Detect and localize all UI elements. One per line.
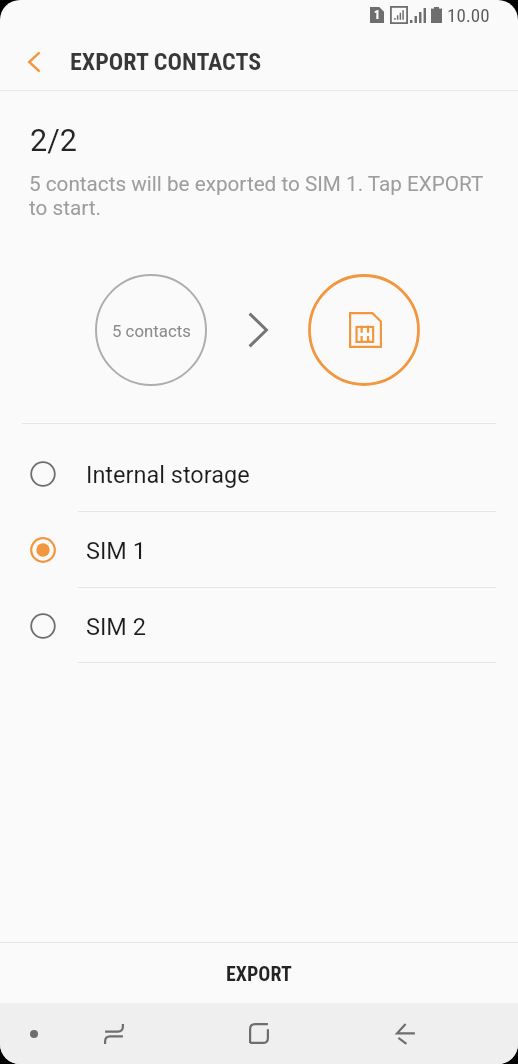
button[interactable]: Navigate up: [6, 33, 62, 90]
button[interactable]: SIM 1: [0, 512, 518, 588]
staticText: 2/2: [30, 123, 77, 159]
staticText: 10.00: [447, 4, 490, 26]
staticText: EXPORT: [226, 962, 292, 985]
staticText: 1: [374, 8, 381, 22]
button[interactable]: Internal storage: [0, 436, 518, 512]
button[interactable]: Home: [229, 1003, 289, 1064]
staticText: Internal storage: [86, 461, 250, 489]
staticText: SIM 1: [86, 537, 146, 565]
staticText: SIM 2: [86, 613, 146, 641]
staticText: 5 contacts will be exported to SIM 1. Ta…: [29, 172, 484, 220]
button[interactable]: EXPORT: [0, 943, 518, 1003]
button[interactable]: Back: [376, 1003, 436, 1064]
staticText: EXPORT CONTACTS: [70, 48, 262, 76]
button[interactable]: SIM 2: [0, 588, 518, 663]
staticText: 5 contacts: [112, 321, 191, 341]
button[interactable]: Recents: [84, 1003, 144, 1064]
